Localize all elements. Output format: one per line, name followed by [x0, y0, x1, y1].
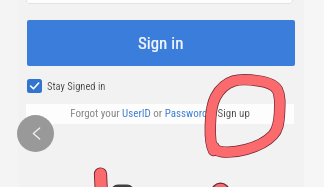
- staticText: Sign in: [138, 33, 184, 53]
- button[interactable]: Forgot your UserID or Password Sign up: [26, 106, 294, 120]
- button[interactable]: [26, 0, 293, 4]
- button[interactable]: Sign in: [27, 20, 295, 66]
- staticText: Stay Signed in: [47, 80, 106, 92]
- button[interactable]: Back: [17, 115, 54, 152]
- staticText: Forgot your UserID or Password Sign up: [70, 107, 250, 120]
- button[interactable]: Stay Signed in: [27, 79, 42, 93]
